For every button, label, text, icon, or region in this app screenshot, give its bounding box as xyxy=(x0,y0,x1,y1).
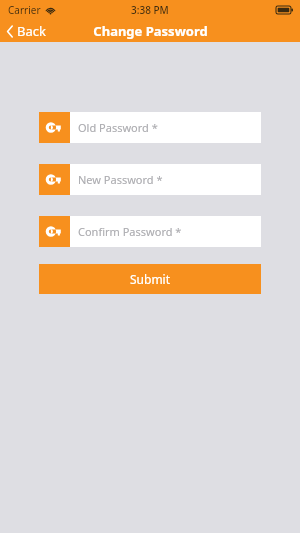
staticText: Confirm Password * xyxy=(78,224,182,239)
staticText: 3:38 PM xyxy=(131,3,169,17)
staticText: Carrier xyxy=(8,3,41,17)
staticText: Old Password * xyxy=(78,120,158,135)
button[interactable]: New Password * xyxy=(39,164,261,195)
staticText: Change Password xyxy=(93,22,208,40)
staticText: Submit xyxy=(130,271,171,287)
button[interactable]: Submit xyxy=(39,264,261,294)
staticText: New Password * xyxy=(78,172,163,187)
button[interactable]: Old Password * xyxy=(39,112,261,143)
button[interactable]: Back xyxy=(0,20,52,42)
button[interactable]: Confirm Password * xyxy=(39,216,261,247)
staticText: Back xyxy=(17,22,46,40)
